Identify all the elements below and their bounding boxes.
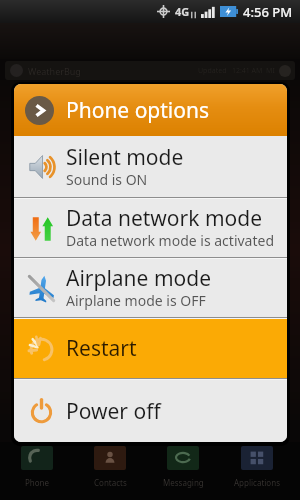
button[interactable]: Silent mode — [14, 136, 287, 197]
staticText: Applications — [234, 477, 280, 488]
button[interactable]: Airplane mode — [14, 259, 287, 317]
staticText: Phone — [25, 477, 50, 488]
staticText: WeatherBug — [28, 65, 81, 77]
staticText: Data network mode — [66, 204, 262, 233]
staticText: Power off — [66, 397, 161, 426]
staticText: Airplane mode is OFF — [66, 291, 206, 310]
button[interactable]: Restart — [14, 319, 287, 378]
staticText: Data network mode is activated — [66, 231, 275, 250]
staticText: Silent mode — [66, 143, 184, 172]
button[interactable]: Data network mode — [14, 199, 287, 257]
staticText: 4G — [175, 4, 190, 19]
staticText: 4:56 PM — [243, 3, 293, 21]
staticText: Contacts — [94, 477, 127, 488]
staticText: Airplane mode — [66, 264, 212, 293]
staticText: Sound is ON — [66, 170, 148, 189]
button[interactable]: Power off — [14, 380, 287, 442]
staticText: Updated 12:41 AM MI — [198, 66, 275, 76]
staticText: Restart — [66, 334, 137, 363]
staticText: Phone options — [66, 96, 210, 125]
staticText: Messaging — [163, 477, 204, 488]
